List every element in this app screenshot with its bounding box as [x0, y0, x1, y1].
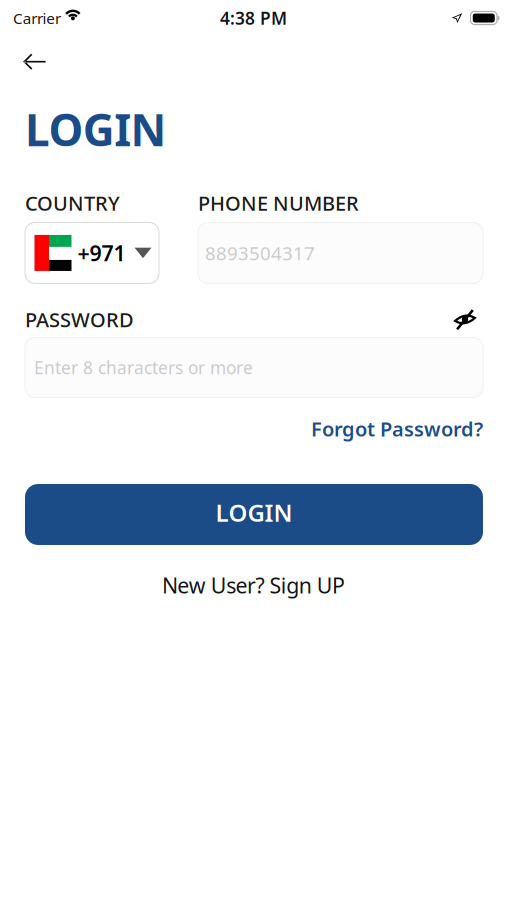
staticText: LOGIN — [215, 497, 292, 528]
button[interactable]: Show password — [454, 310, 483, 329]
staticText: Forgot Password? — [311, 415, 483, 442]
staticText: PHONE NUMBER — [198, 190, 359, 216]
staticText: LOGIN — [25, 100, 167, 158]
staticText: PASSWORD — [25, 306, 134, 333]
button[interactable]: New User? Sign UP — [162, 571, 345, 599]
button[interactable]: +971 — [25, 222, 159, 283]
staticText: +971 — [77, 239, 125, 267]
staticText: Carrier — [13, 8, 61, 28]
staticText: 4:38 PM — [220, 6, 287, 29]
button[interactable]: Back — [12, 44, 57, 80]
staticText: COUNTRY — [25, 190, 120, 216]
button[interactable]: Forgot Password? — [311, 415, 483, 442]
staticText: Enter 8 characters or more — [34, 356, 253, 379]
staticText: 8893504317 — [205, 240, 315, 265]
staticText: New User? Sign UP — [162, 571, 345, 599]
button[interactable]: LOGIN — [25, 484, 483, 545]
